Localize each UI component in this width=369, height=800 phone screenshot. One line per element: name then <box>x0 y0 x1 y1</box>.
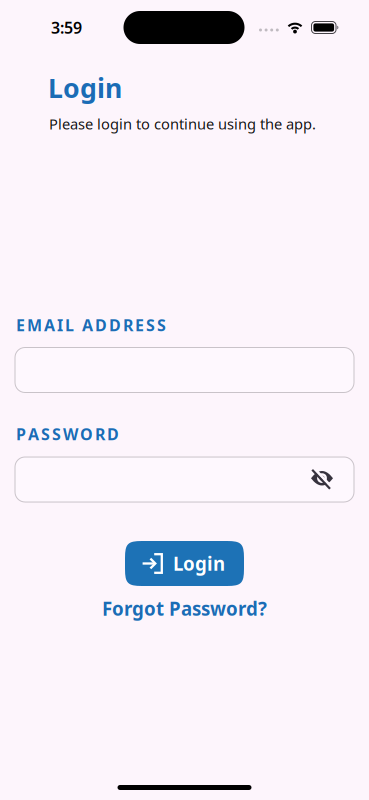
staticText: Login <box>48 70 122 105</box>
staticText: Please login to continue using the app. <box>49 114 316 133</box>
staticText: P A S S W O R D <box>16 423 119 445</box>
staticText: Forgot Password? <box>102 596 267 621</box>
button[interactable]: Password <box>15 457 354 502</box>
button[interactable]: Login <box>125 541 244 586</box>
staticText: Login <box>173 551 225 576</box>
button[interactable]: Show password <box>311 469 333 489</box>
staticText: 3:59 <box>51 17 82 38</box>
button[interactable]: Forgot Password? <box>102 596 267 621</box>
staticText: E M A I L A D D R E S S <box>16 314 166 336</box>
